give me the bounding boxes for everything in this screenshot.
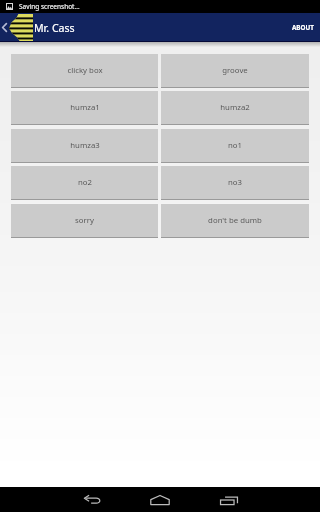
button[interactable]: Recent apps [206, 487, 252, 512]
button[interactable]: no1 [161, 129, 309, 163]
button[interactable]: Home [137, 487, 183, 512]
button[interactable]: don't be dumb [161, 204, 309, 238]
button[interactable]: clicky box [11, 54, 158, 88]
staticText: sorry [75, 215, 94, 226]
button[interactable]: sorry [11, 204, 158, 238]
staticText: no1 [228, 140, 242, 151]
button[interactable]: humza3 [11, 129, 158, 163]
button[interactable]: no3 [161, 166, 309, 200]
staticText: groove [222, 65, 248, 76]
button[interactable]: humza2 [161, 91, 309, 125]
button[interactable]: Back [69, 487, 115, 512]
staticText: humza1 [70, 102, 100, 113]
staticText: humza3 [70, 140, 100, 151]
staticText: Mr. Cass [34, 21, 75, 35]
staticText: humza2 [220, 102, 250, 113]
button[interactable]: ABOUT [286, 13, 320, 42]
button[interactable]: no2 [11, 166, 158, 200]
button[interactable]: groove [161, 54, 309, 88]
staticText: no3 [228, 177, 242, 188]
staticText: don't be dumb [208, 215, 262, 226]
staticText: clicky box [67, 65, 103, 76]
button[interactable]: Navigate up [0, 13, 33, 42]
staticText: Saving screenshot… [19, 2, 80, 11]
staticText: ABOUT [292, 23, 314, 32]
staticText: no2 [78, 177, 92, 188]
button[interactable]: humza1 [11, 91, 158, 125]
